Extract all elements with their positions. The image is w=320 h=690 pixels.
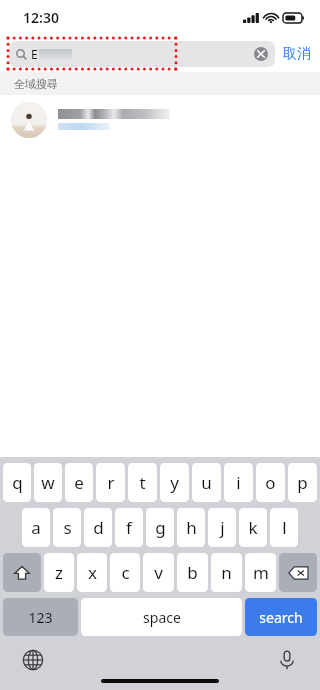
staticText: y	[170, 471, 179, 494]
staticText: 123	[28, 608, 53, 627]
button[interactable]: k	[239, 508, 267, 547]
staticText: c	[121, 561, 130, 584]
button[interactable]: s	[53, 508, 81, 547]
button[interactable]: Change keyboard language	[22, 649, 44, 671]
staticText: d	[93, 516, 104, 539]
button[interactable]: h	[177, 508, 205, 547]
staticText: 取消	[283, 45, 311, 63]
button[interactable]: t	[128, 463, 157, 502]
button[interactable]: g	[146, 508, 174, 547]
button[interactable]: Backspace	[279, 553, 317, 592]
button[interactable]: Dictate	[276, 649, 298, 671]
staticText: e	[74, 471, 84, 494]
staticText: v	[154, 561, 163, 584]
button[interactable]: E	[9, 41, 275, 67]
button[interactable]: c	[110, 553, 140, 592]
button[interactable]: z	[44, 553, 74, 592]
staticText: l	[282, 516, 287, 539]
button[interactable]: r	[96, 463, 125, 502]
staticText: m	[253, 561, 269, 584]
staticText: E	[31, 46, 38, 62]
button[interactable]: j	[208, 508, 236, 547]
button[interactable]: p	[288, 463, 317, 502]
button[interactable]: search	[245, 598, 317, 636]
staticText: u	[201, 471, 212, 494]
staticText: h	[186, 516, 197, 539]
button[interactable]: l	[270, 508, 298, 547]
button[interactable]: 123	[3, 598, 78, 636]
staticText: space	[143, 608, 181, 627]
button[interactable]: m	[245, 553, 276, 592]
staticText: i	[236, 471, 241, 494]
staticText: x	[88, 561, 97, 584]
button[interactable]: i	[224, 463, 253, 502]
staticText: j	[220, 516, 225, 539]
button[interactable]: w	[34, 463, 62, 502]
button[interactable]: x	[77, 553, 107, 592]
staticText: r	[107, 471, 115, 494]
button[interactable]: n	[211, 553, 242, 592]
staticText: f	[126, 516, 132, 539]
staticText: a	[31, 516, 41, 539]
staticText: t	[139, 471, 146, 494]
button[interactable]: Shift	[3, 553, 41, 592]
staticText: search	[259, 608, 303, 627]
button[interactable]: space	[81, 598, 242, 636]
button[interactable]	[0, 95, 320, 144]
staticText: w	[41, 471, 55, 494]
staticText: p	[297, 471, 308, 494]
staticText: b	[187, 561, 198, 584]
staticText: n	[221, 561, 232, 584]
button[interactable]: v	[143, 553, 174, 592]
button[interactable]: o	[256, 463, 285, 502]
button[interactable]: 取消	[283, 45, 311, 63]
button[interactable]: d	[84, 508, 112, 547]
staticText: o	[265, 471, 276, 494]
button[interactable]: e	[65, 463, 93, 502]
button[interactable]: b	[177, 553, 208, 592]
button[interactable]: u	[192, 463, 221, 502]
staticText: s	[63, 516, 72, 539]
staticText: 全域搜尋	[14, 77, 58, 91]
staticText: q	[12, 471, 23, 494]
button[interactable]: q	[3, 463, 31, 502]
button[interactable]: f	[115, 508, 143, 547]
staticText: g	[155, 516, 166, 539]
staticText: 12:30	[23, 8, 59, 27]
button[interactable]: Clear search text	[254, 47, 268, 61]
staticText: z	[55, 561, 63, 584]
button[interactable]: y	[160, 463, 189, 502]
button[interactable]: a	[22, 508, 50, 547]
staticText: k	[248, 516, 258, 539]
